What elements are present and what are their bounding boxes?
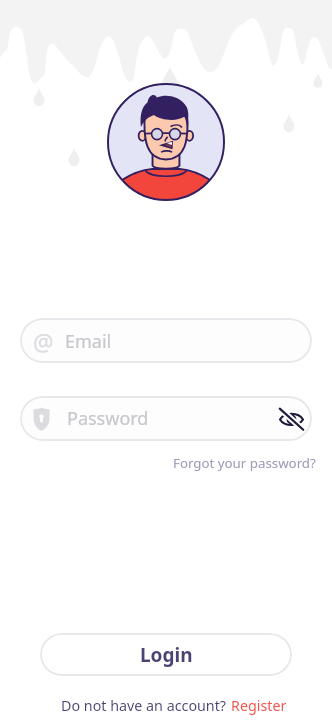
button[interactable]: Show password (277, 405, 305, 433)
button[interactable]: Register (231, 696, 287, 715)
staticText: Email (65, 329, 112, 354)
button[interactable]: Password (20, 396, 312, 441)
staticText: @ (33, 326, 52, 356)
staticText: Login (140, 642, 193, 668)
button[interactable]: Forgot your password? (173, 454, 316, 472)
staticText: Do not have an account? (61, 696, 227, 715)
button[interactable]: Login (40, 633, 292, 676)
button[interactable]: @ (20, 318, 312, 363)
staticText: Password (67, 406, 149, 431)
